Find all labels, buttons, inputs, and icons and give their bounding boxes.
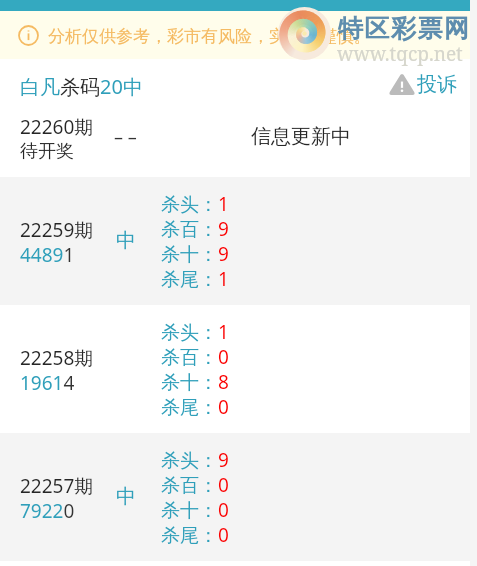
button[interactable]: 投诉 <box>387 70 463 99</box>
staticText: 22259期 <box>20 217 94 243</box>
staticText: – – <box>114 125 137 150</box>
staticText: 杀十：8 <box>161 369 229 395</box>
staticText: 杀百：0 <box>161 344 229 370</box>
staticText: 杀十：0 <box>161 497 229 523</box>
staticText: 信息更新中 <box>251 124 351 149</box>
staticText: 杀百：0 <box>161 472 229 498</box>
staticText: 22258期 <box>20 345 94 371</box>
other: Info <box>18 25 39 46</box>
button[interactable]: 22260期 <box>0 104 477 177</box>
button[interactable]: 22257期 <box>0 433 477 561</box>
staticText: 杀尾：1 <box>161 266 229 292</box>
staticText: 杀头：1 <box>161 191 229 217</box>
staticText: 杀尾：0 <box>161 394 229 420</box>
staticText: 44891 <box>20 242 75 268</box>
staticText: 特区彩票网 <box>338 13 471 44</box>
staticText: 19614 <box>20 370 75 396</box>
staticText: 杀尾：0 <box>161 522 229 548</box>
button[interactable]: 22259期 <box>0 177 477 305</box>
staticText: 杀十：9 <box>161 241 229 267</box>
staticText: 22257期 <box>20 473 94 499</box>
staticText: 22260期 <box>20 114 94 140</box>
staticText: 杀百：9 <box>161 216 229 242</box>
staticText: 杀头：1 <box>161 319 229 345</box>
staticText: 中 <box>116 228 136 253</box>
button[interactable]: 22258期 <box>0 305 477 433</box>
staticText: 中 <box>116 484 136 509</box>
staticText: 79220 <box>20 498 75 524</box>
staticText: 杀头：9 <box>161 447 229 473</box>
button[interactable]: 白凡杀码20中 <box>20 73 143 100</box>
staticText: 分析仅供参考，彩市有风险，实力请谨慎。 <box>48 26 371 47</box>
staticText: www.tqcp.net <box>337 41 463 67</box>
staticText: 待开奖 <box>20 140 74 163</box>
staticText: 投诉 <box>417 72 457 97</box>
